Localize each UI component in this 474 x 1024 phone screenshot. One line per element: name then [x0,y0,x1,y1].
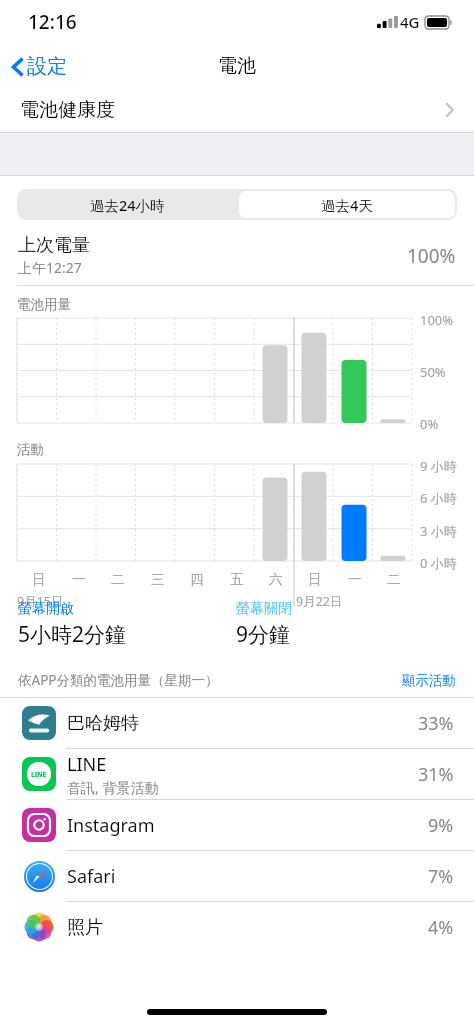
staticText: 依APP分類的電池用量（星期一） [18,671,402,689]
staticText: 五 [230,571,244,588]
button[interactable]: 巴哈姆特 [0,698,474,748]
button[interactable]: Safari [0,851,474,901]
staticText: 12:16 [28,9,77,35]
staticText: 9分鐘 [236,620,291,649]
staticText: 上午12:27 [18,258,82,277]
staticText: 33% [418,711,454,736]
staticText: Instagram [67,813,155,838]
staticText: 4% [428,915,454,940]
button[interactable]: Instagram [0,800,474,850]
button[interactable]: 照片 [0,902,474,952]
staticText: 電池健康度 [20,98,115,122]
staticText: 電池 [218,54,256,78]
button[interactable]: LINE [0,749,474,799]
staticText: 50% [420,363,446,381]
staticText: 一 [348,571,362,588]
button[interactable]: 設定 [0,50,75,83]
staticText: 6 小時 [420,489,457,507]
staticText: 過去24小時 [90,195,165,215]
staticText: 0 小時 [420,554,457,572]
staticText: 巴哈姆特 [67,712,139,735]
staticText: 0% [420,415,439,433]
staticText: 上次電量 [18,234,90,257]
staticText: 三 [151,571,165,588]
staticText: 二 [387,571,401,588]
staticText: 音訊, 背景活動 [67,778,159,797]
staticText: 螢幕開啟 [18,600,74,618]
staticText: 5小時2分鐘 [18,620,127,649]
staticText: 7% [428,864,454,889]
button[interactable]: 過去24小時 [17,189,237,220]
staticText: 六 [269,571,283,588]
staticText: 設定 [27,54,67,79]
staticText: 9% [428,813,454,838]
button[interactable]: 顯示活動 [402,672,456,689]
staticText: 螢幕關閉 [236,600,292,618]
staticText: 100% [407,243,456,269]
staticText: 日 [308,571,322,588]
staticText: 3 小時 [420,522,457,540]
staticText: 顯示活動 [402,672,456,689]
staticText: 照片 [67,916,103,939]
staticText: 一 [72,571,86,588]
staticText: 9月15日 [17,593,64,610]
staticText: 電池用量 [17,296,71,313]
staticText: 100% [420,311,454,329]
button[interactable]: 電池健康度 [0,88,474,132]
staticText: 4G [400,12,420,32]
staticText: 四 [190,571,204,588]
staticText: LINE [67,752,107,777]
staticText: 9月22日 [296,593,343,610]
staticText: LINE [31,770,47,779]
staticText: 9 小時 [420,457,457,475]
staticText: Safari [67,864,116,889]
button[interactable]: 過去4天 [239,191,455,218]
staticText: 活動 [17,441,44,458]
staticText: 二 [111,571,125,588]
staticText: 過去4天 [321,195,373,215]
staticText: 31% [418,762,454,787]
staticText: 日 [32,571,46,588]
